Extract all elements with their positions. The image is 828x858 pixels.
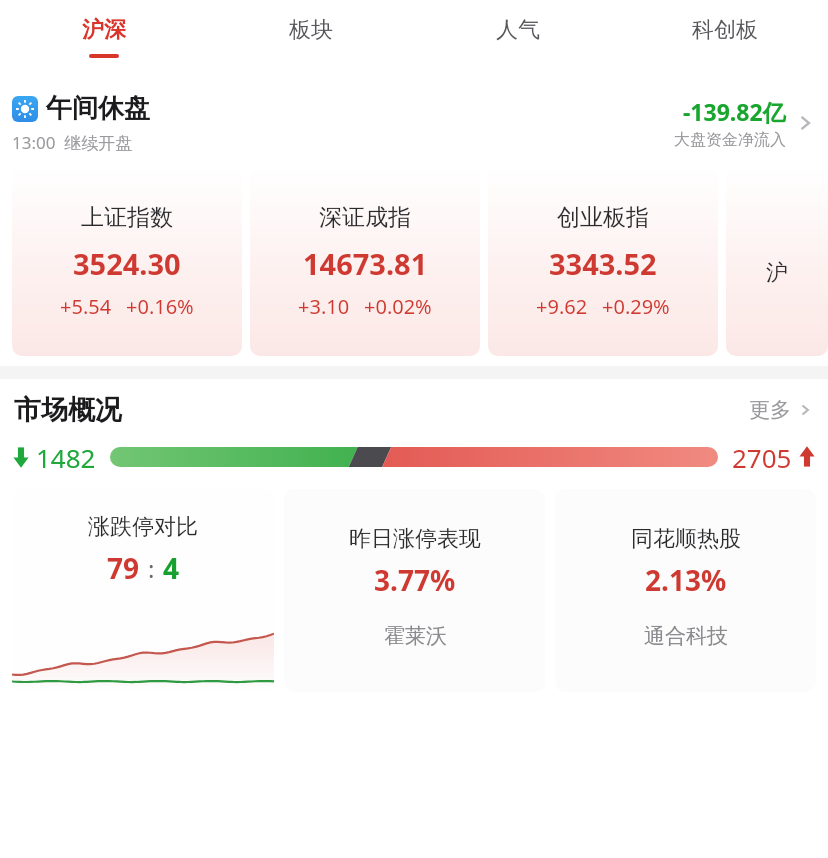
staticText: +0.16% [126,293,194,320]
staticText: 3343.52 [549,244,657,283]
button[interactable]: 涨跌停对比 [12,489,274,692]
staticText: +0.29% [602,293,670,320]
button[interactable]: 更多 [749,397,814,423]
staticText: +3.10 [298,293,350,320]
staticText: 午间休盘 [46,92,150,125]
staticText: +9.62 [536,293,588,320]
staticText: 板块 [289,16,333,44]
button[interactable]: 午间休盘 [0,92,828,154]
staticText: 通合科技 [644,623,728,649]
button[interactable]: 深证成指 [250,166,480,356]
button[interactable]: 沪深 [0,0,207,78]
staticText: 昨日涨停表现 [349,525,481,553]
button[interactable]: 沪 [726,166,828,356]
button[interactable]: 科创板 [621,0,828,78]
staticText: 13:00 继续开盘 [12,131,133,154]
button[interactable]: 板块 [207,0,414,78]
button[interactable]: 昨日涨停表现 [284,489,545,692]
staticText: 科创板 [692,16,758,44]
staticText: 人气 [496,16,540,44]
button[interactable]: 同花顺热股 [555,489,816,692]
staticText: 3.77% [374,561,456,599]
other: 查看详情 [792,110,818,136]
staticText: 创业板指 [557,203,649,232]
staticText: 4 [163,549,180,587]
staticText: : [148,552,155,585]
staticText: 上证指数 [81,203,173,232]
staticText: 大盘资金净流入 [674,130,786,150]
staticText: +0.02% [364,293,432,320]
staticText: 2.13% [645,561,727,599]
staticText: +5.54 [60,293,112,320]
staticText: 沪 [766,259,788,287]
staticText: 14673.81 [303,244,428,283]
staticText: 更多 [749,397,791,423]
button[interactable]: 人气 [414,0,621,78]
staticText: 市场概况 [14,393,122,427]
staticText: 深证成指 [319,203,411,232]
button[interactable]: 上证指数 [12,166,242,356]
staticText: 同花顺热股 [631,525,741,553]
staticText: 涨跌停对比 [88,513,198,541]
staticText: 79 [107,549,140,587]
staticText: 沪深 [82,16,126,44]
staticText: 3524.30 [73,244,181,283]
staticText: 霍莱沃 [384,623,447,649]
button[interactable]: 创业板指 [488,166,718,356]
staticText: -139.82亿 [683,96,786,127]
staticText: 2705 [732,440,792,475]
staticText: 1482 [36,440,96,475]
